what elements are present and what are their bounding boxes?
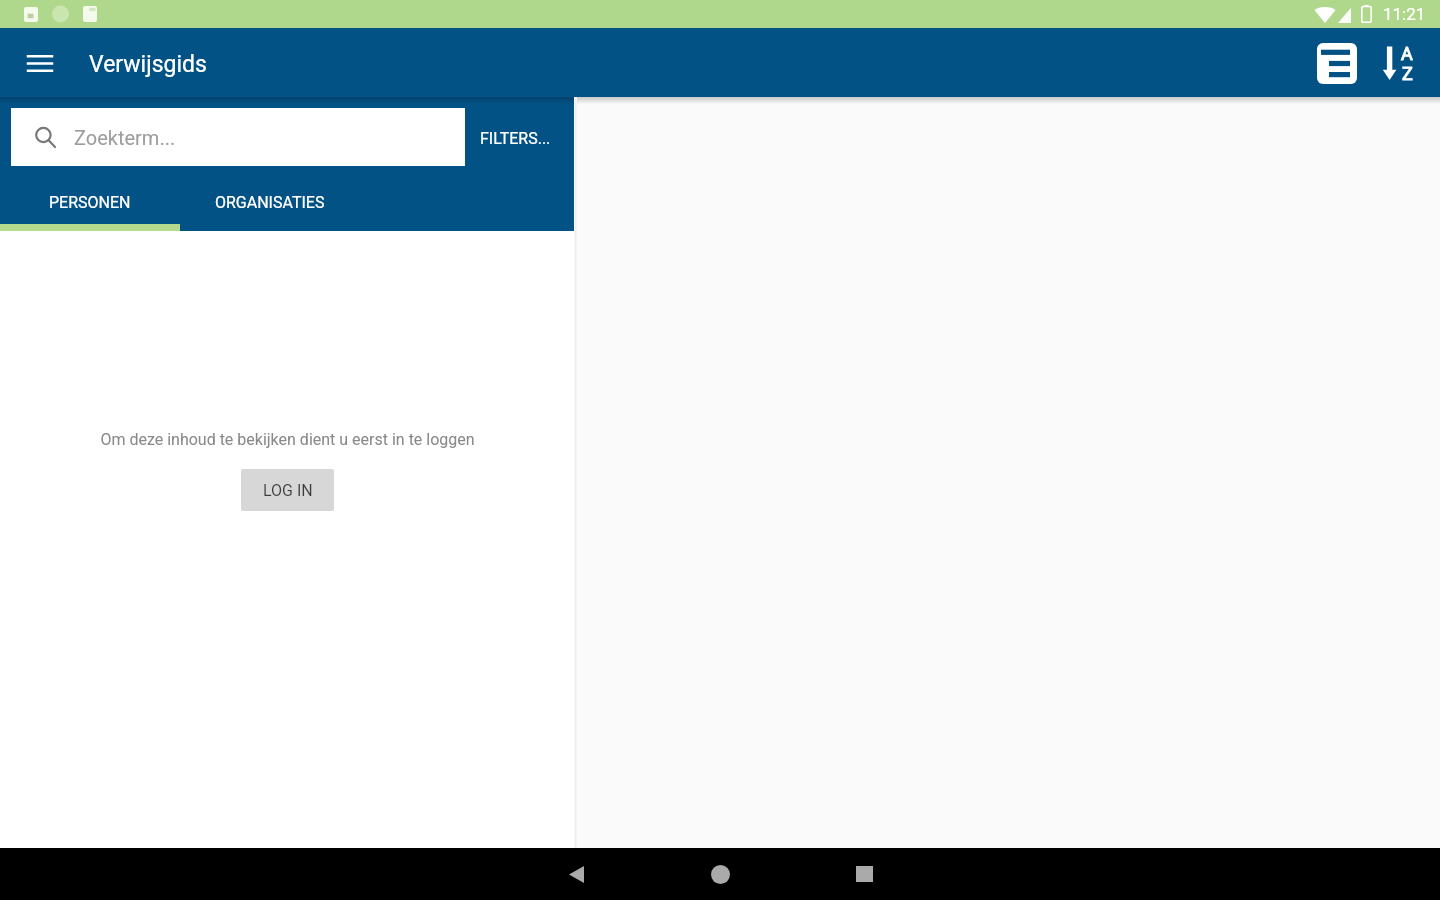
button[interactable]: Back [552,850,600,898]
button[interactable]: View mode [1309,35,1365,91]
staticText: Z [1402,63,1413,84]
button[interactable]: ORGANISATIES [180,174,360,231]
button[interactable]: Recent apps [840,850,888,898]
button[interactable]: FILTERS... [473,109,557,167]
button[interactable]: PERSONEN [0,174,180,231]
staticText: Om deze inhoud te bekijken dient u eerst… [100,430,475,449]
staticText: A [1401,43,1413,64]
button[interactable]: Open navigation menu [16,39,64,87]
button[interactable]: Sort alphabetically [1370,35,1426,91]
staticText: ORGANISATIES [215,193,325,212]
staticText: LOG IN [263,481,313,500]
staticText: PERSONEN [49,193,131,212]
staticText: FILTERS... [480,129,551,148]
button[interactable]: LOG IN [241,469,334,511]
button[interactable]: Zoekterm... [11,108,465,166]
staticText: Verwijsgids [89,51,207,78]
staticText: 11:21 [1383,4,1426,24]
staticText: Zoekterm... [74,126,176,149]
button[interactable]: Home [696,850,744,898]
